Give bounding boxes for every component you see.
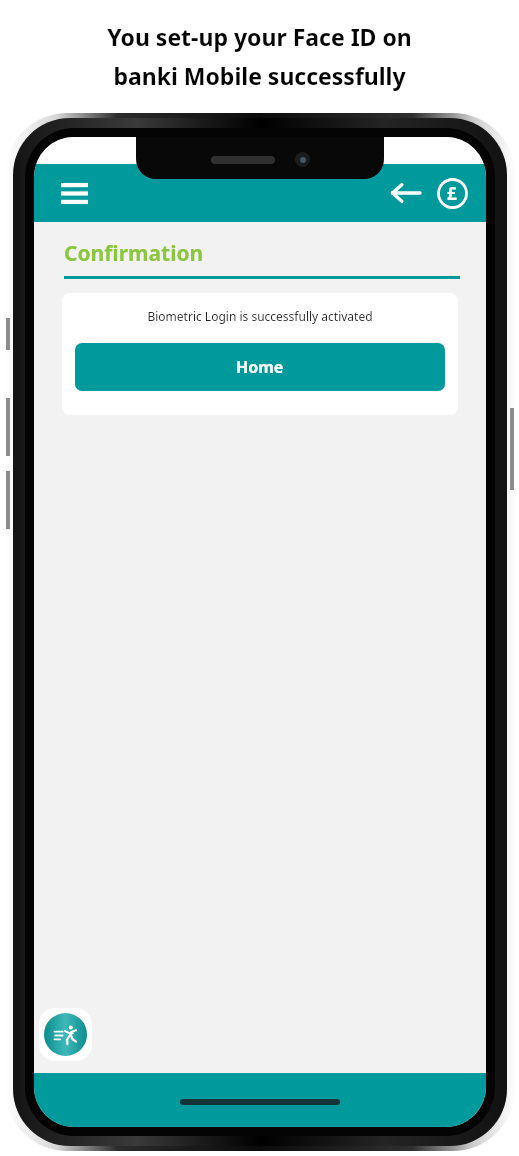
- staticText: £: [447, 182, 457, 205]
- button[interactable]: Home: [75, 343, 445, 391]
- button[interactable]: Menu: [50, 169, 98, 217]
- staticText: banki Mobile successfully: [113, 60, 406, 91]
- button[interactable]: Quick actions: [39, 1008, 92, 1061]
- staticText: Home: [236, 356, 284, 378]
- button[interactable]: Back: [384, 171, 428, 215]
- staticText: You set-up your Face ID on: [107, 21, 412, 52]
- staticText: Confirmation: [64, 239, 204, 268]
- staticText: Biometric Login is successfully activate…: [147, 308, 373, 324]
- button[interactable]: Currency: [430, 171, 474, 215]
